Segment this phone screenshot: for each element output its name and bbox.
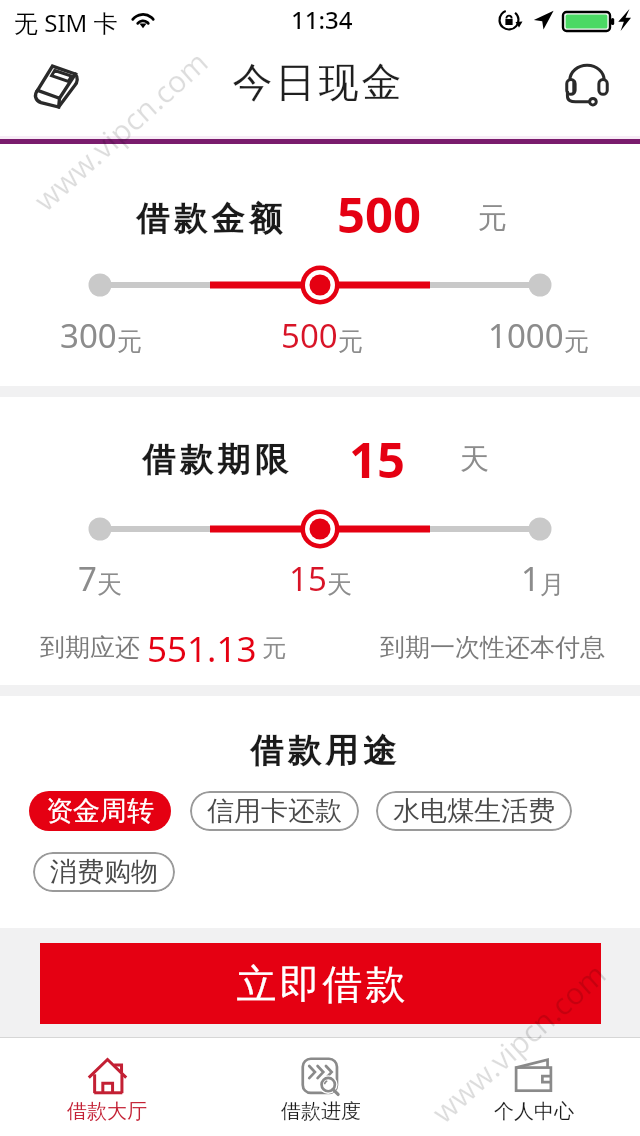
staticText: 借款进度	[281, 1099, 361, 1124]
staticText: 借款用途	[248, 730, 398, 772]
staticText: 信用卡还款	[207, 794, 342, 828]
button[interactable]: 水电煤生活费	[376, 791, 572, 831]
button[interactable]: 借款大厅	[0, 1038, 214, 1136]
staticText: 天	[327, 569, 352, 600]
staticText: 500	[337, 181, 422, 248]
staticText: 借款金额	[134, 198, 284, 240]
staticText: 今日现金	[231, 57, 403, 107]
staticText: 300	[60, 313, 117, 358]
staticText: 1000	[488, 313, 564, 358]
staticText: 元	[338, 326, 363, 357]
staticText: 15	[349, 426, 406, 493]
staticText: www.vipcn.com	[25, 41, 216, 220]
staticText: 11:34	[291, 3, 353, 36]
staticText: 1	[521, 556, 540, 601]
button[interactable]: 立即借款	[40, 943, 601, 1024]
staticText: 无 SIM 卡	[14, 6, 118, 39]
staticText: 消费购物	[50, 855, 158, 889]
button[interactable]: 消费购物	[33, 852, 175, 892]
staticText: 个人中心	[494, 1099, 574, 1124]
staticText: 7	[78, 556, 97, 601]
staticText: 元	[478, 200, 507, 237]
staticText: www.vipcn.com	[423, 953, 614, 1132]
button[interactable]: 个人中心	[427, 1038, 640, 1136]
staticText: 551.13	[147, 625, 257, 673]
button[interactable]: Customer service	[553, 50, 621, 118]
staticText: 天	[97, 569, 122, 600]
staticText: 15	[289, 556, 327, 601]
staticText: 元	[262, 633, 286, 663]
staticText: 月	[540, 569, 565, 600]
staticText: 到期应还	[40, 632, 140, 663]
staticText: 立即借款	[235, 959, 407, 1009]
staticText: 元	[117, 326, 142, 357]
button[interactable]: Guide	[22, 51, 90, 119]
button[interactable]: 信用卡还款	[190, 791, 359, 831]
staticText: 500	[281, 313, 338, 358]
staticText: 借款大厅	[67, 1099, 147, 1124]
button[interactable]: 借款进度	[214, 1038, 427, 1136]
staticText: 资金周转	[46, 794, 154, 828]
staticText: 水电煤生活费	[393, 794, 555, 828]
staticText: 到期一次性还本付息	[380, 632, 605, 663]
staticText: 天	[460, 441, 489, 478]
button[interactable]: 资金周转	[29, 791, 171, 831]
staticText: 元	[564, 326, 589, 357]
staticText: 借款期限	[140, 439, 290, 481]
